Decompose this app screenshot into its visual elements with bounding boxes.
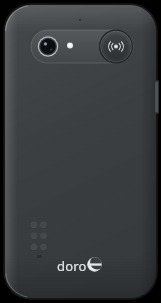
button[interactable]: Doro phone rear view [0, 0, 161, 303]
staticText: doro [57, 257, 87, 275]
